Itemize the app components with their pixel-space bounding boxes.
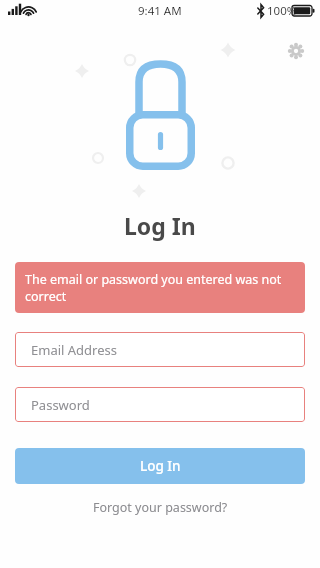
button[interactable]: Settings: [284, 39, 308, 63]
button[interactable]: The email or password you entered was no…: [15, 262, 305, 313]
staticText: 9:41 AM: [138, 3, 182, 19]
staticText: The email or password you entered was no…: [25, 271, 295, 304]
staticText: Email Address: [31, 341, 117, 359]
button[interactable]: Email Address: [15, 332, 305, 367]
staticText: Forgot your password?: [93, 499, 228, 516]
staticText: Log In: [124, 210, 196, 241]
button[interactable]: Log In: [15, 448, 305, 484]
button[interactable]: Password: [15, 387, 305, 422]
button[interactable]: Forgot your password?: [79, 493, 242, 522]
staticText: 100%: [267, 3, 297, 19]
staticText: Log In: [140, 457, 181, 475]
staticText: Password: [31, 396, 90, 414]
